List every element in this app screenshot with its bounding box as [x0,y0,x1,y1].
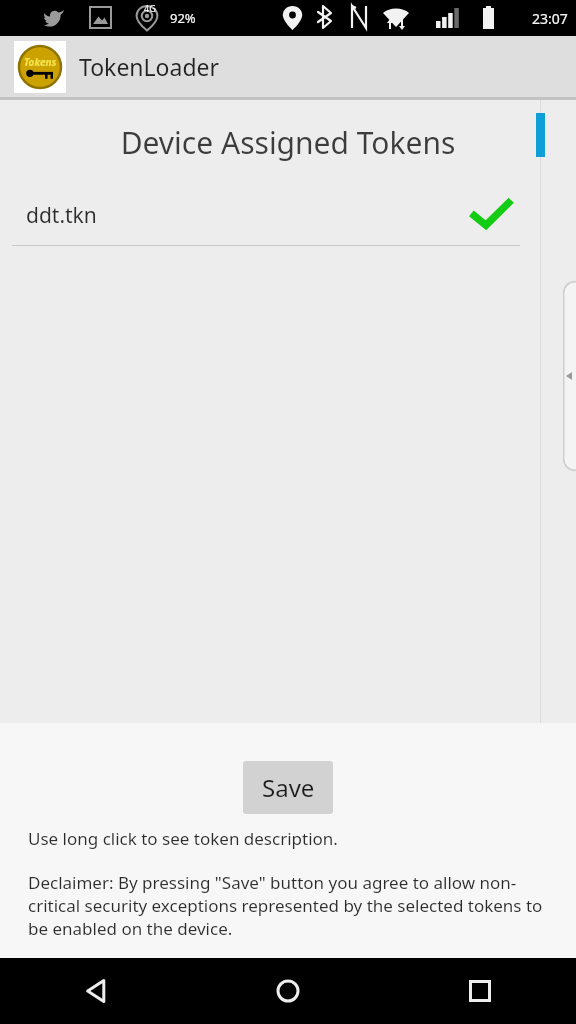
staticText: ddt.tkn [26,201,97,230]
staticText: 4G [144,2,156,14]
staticText: 23:07 [532,9,568,28]
staticText: Declaimer: By pressing "Save" button you… [28,871,550,940]
staticText: TokenLoader [79,51,220,82]
button[interactable]: Home [192,958,384,1024]
staticText: Save [262,771,315,804]
button[interactable]: Recent apps [384,958,576,1024]
staticText: Use long click to see token description. [28,827,338,850]
button[interactable]: Open side panel [563,281,576,471]
button[interactable]: TokenLoader app icon [14,41,66,93]
button[interactable]: Save [243,761,333,814]
staticText: Tokens [24,55,57,69]
button[interactable]: Back [0,958,192,1024]
button[interactable]: ddt.tkn [0,189,576,245]
staticText: Device Assigned Tokens [0,122,576,163]
staticText: 92% [170,9,196,27]
